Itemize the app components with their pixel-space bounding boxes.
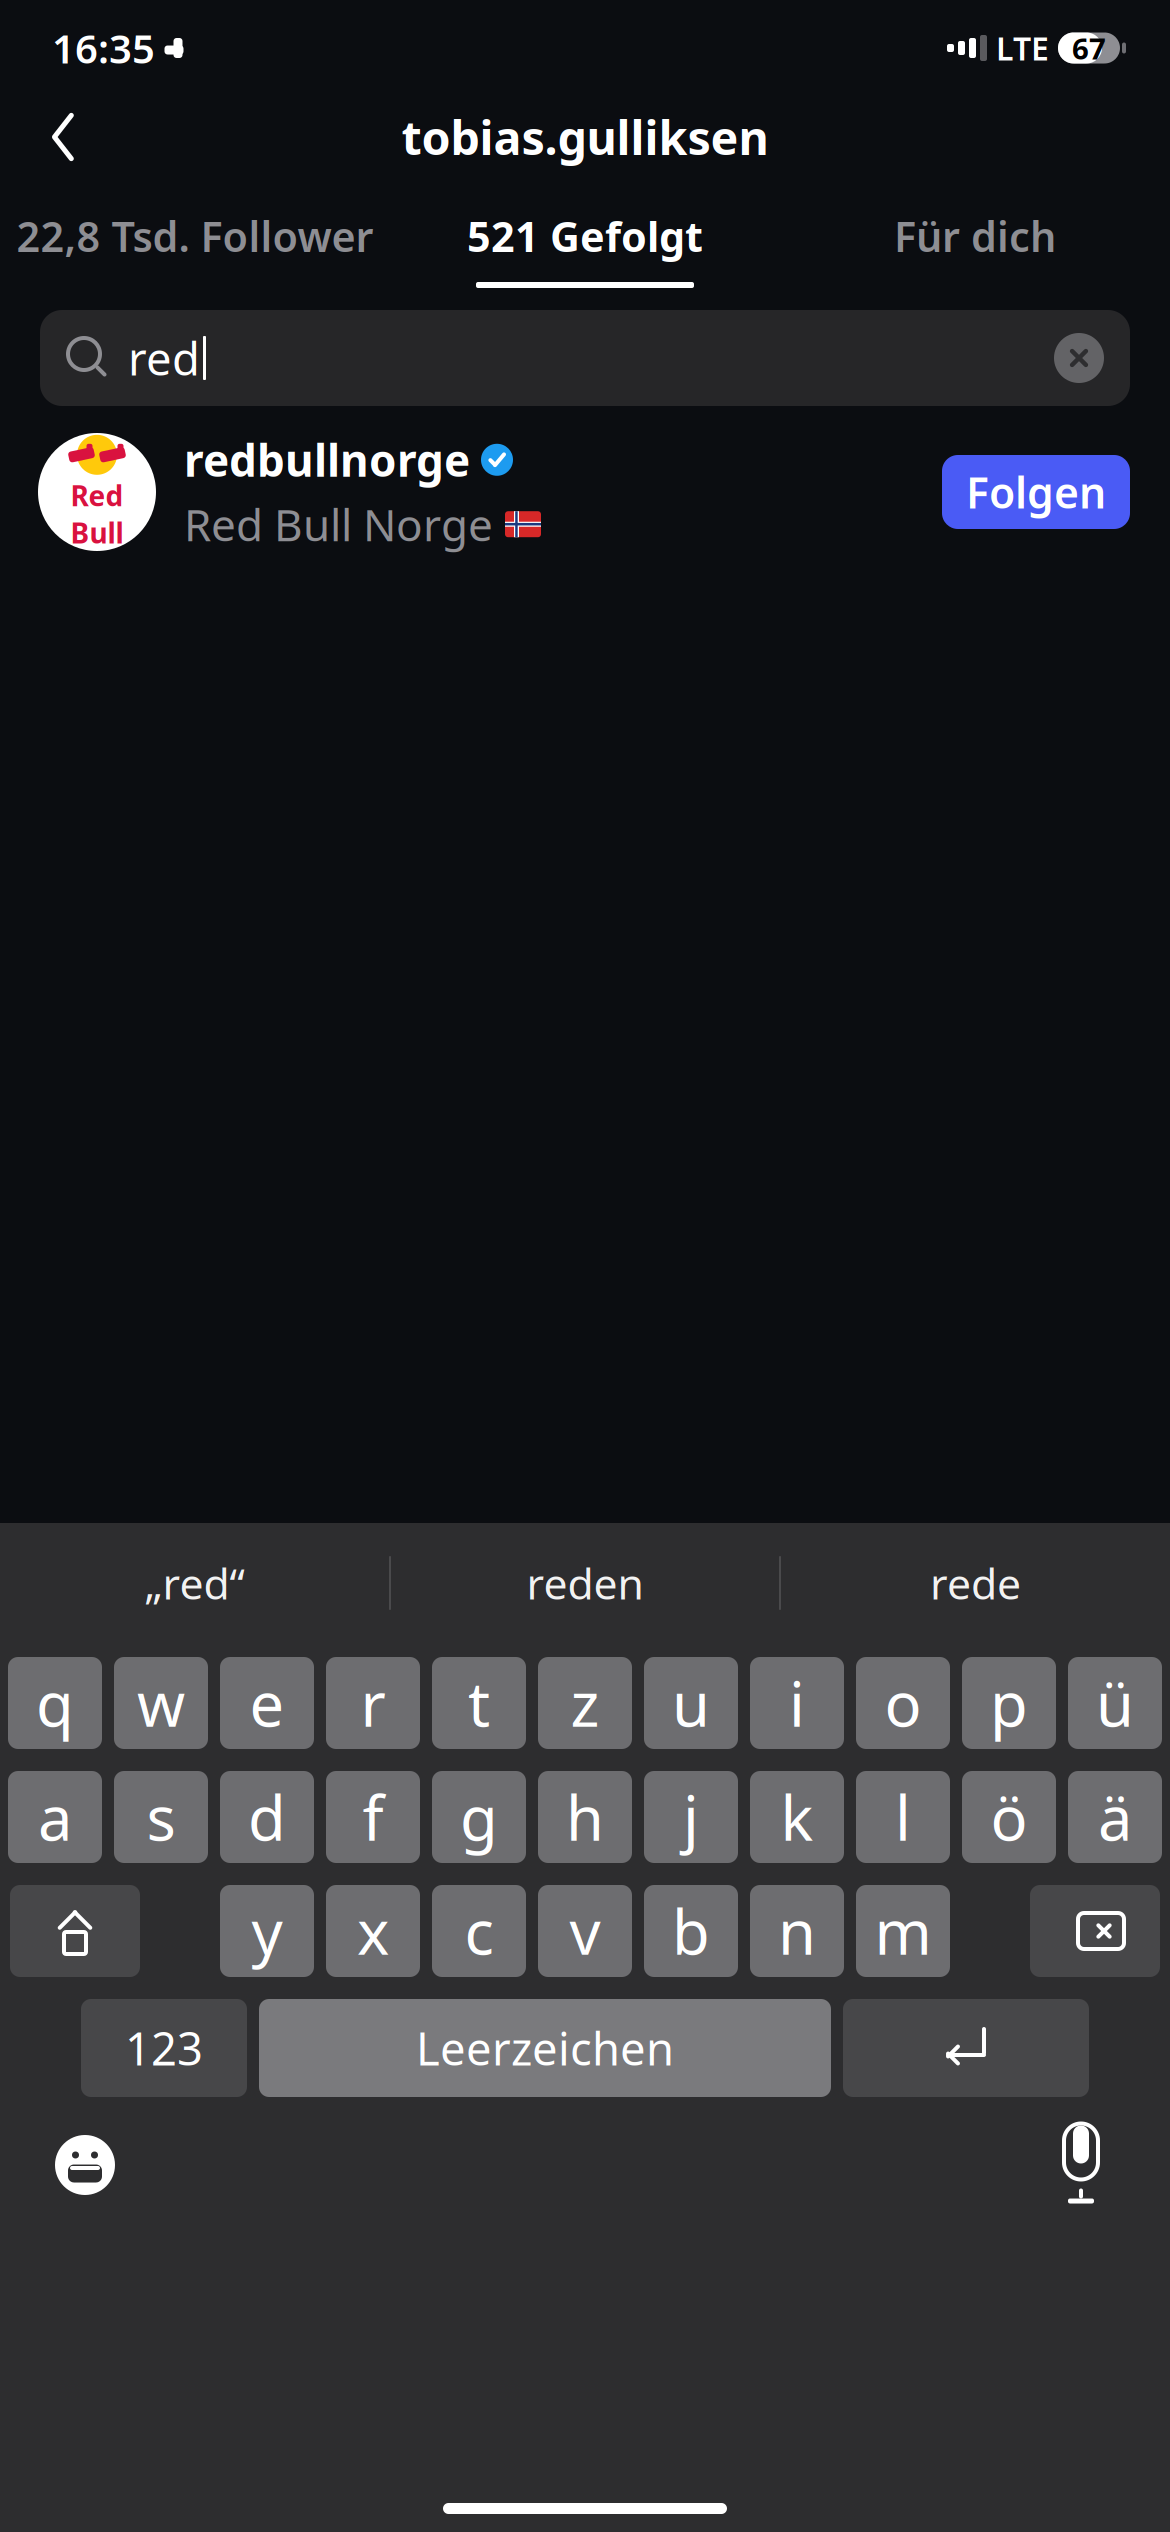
button[interactable]: g bbox=[432, 1771, 526, 1863]
staticText: m bbox=[874, 1890, 931, 1972]
button[interactable]: y bbox=[220, 1885, 314, 1977]
button[interactable]: Shift bbox=[10, 1885, 140, 1977]
button[interactable]: r bbox=[326, 1657, 420, 1749]
button[interactable]: b bbox=[644, 1885, 738, 1977]
button[interactable]: z bbox=[538, 1657, 632, 1749]
button[interactable]: Clear text bbox=[1042, 321, 1116, 395]
staticText: p bbox=[990, 1662, 1028, 1744]
staticText: w bbox=[137, 1662, 185, 1744]
staticText: b bbox=[672, 1890, 710, 1972]
staticText: s bbox=[146, 1776, 175, 1858]
staticText: ö bbox=[990, 1776, 1027, 1858]
button[interactable]: w bbox=[114, 1657, 208, 1749]
button[interactable]: c bbox=[432, 1885, 526, 1977]
staticText: Folgen bbox=[966, 464, 1106, 520]
staticText: e bbox=[249, 1662, 284, 1744]
button[interactable]: Für dich bbox=[780, 190, 1170, 288]
staticText: redbullnorge bbox=[184, 431, 470, 489]
button[interactable]: n bbox=[750, 1885, 844, 1977]
staticText: z bbox=[570, 1662, 599, 1744]
staticText: r bbox=[360, 1662, 385, 1744]
staticText: rede bbox=[930, 1555, 1021, 1611]
staticText: f bbox=[362, 1776, 383, 1858]
staticText: 123 bbox=[125, 2018, 203, 2078]
button[interactable]: o bbox=[856, 1657, 950, 1749]
staticText: 22,8 Tsd. Follower bbox=[16, 209, 373, 263]
staticText: reden bbox=[526, 1555, 643, 1611]
button[interactable]: l bbox=[856, 1771, 950, 1863]
staticText: y bbox=[251, 1890, 282, 1972]
button[interactable]: Leerzeichen bbox=[259, 1999, 831, 2097]
button[interactable]: rede bbox=[781, 1523, 1170, 1643]
button[interactable]: ü bbox=[1068, 1657, 1162, 1749]
staticText: tobias.gulliksen bbox=[401, 106, 768, 168]
button[interactable]: Emoji keyboard bbox=[30, 2115, 140, 2215]
staticText: Red Bull bbox=[70, 477, 123, 551]
staticText: ü bbox=[1096, 1662, 1134, 1744]
button[interactable]: e bbox=[220, 1657, 314, 1749]
button[interactable]: Delete bbox=[1030, 1885, 1160, 1977]
button[interactable]: reden bbox=[391, 1523, 779, 1643]
staticText: c bbox=[464, 1890, 493, 1972]
staticText: o bbox=[884, 1662, 921, 1744]
button[interactable]: x bbox=[326, 1885, 420, 1977]
staticText: 521 Gefolgt bbox=[467, 209, 703, 263]
button[interactable]: 521 Gefolgt bbox=[390, 190, 780, 288]
staticText: x bbox=[357, 1890, 389, 1972]
staticText: LTE bbox=[996, 27, 1049, 69]
button[interactable]: Red Bull bbox=[0, 418, 1170, 566]
staticText: n bbox=[778, 1890, 816, 1972]
staticText: h bbox=[566, 1776, 604, 1858]
button[interactable]: s bbox=[114, 1771, 208, 1863]
button[interactable]: Return bbox=[843, 1999, 1089, 2097]
staticText: red bbox=[128, 328, 200, 388]
button[interactable]: k bbox=[750, 1771, 844, 1863]
button[interactable]: q bbox=[8, 1657, 102, 1749]
staticText: u bbox=[672, 1662, 710, 1744]
staticText: i bbox=[789, 1662, 805, 1744]
button[interactable]: a bbox=[8, 1771, 102, 1863]
button[interactable]: d bbox=[220, 1771, 314, 1863]
button[interactable]: Folgen bbox=[942, 455, 1130, 529]
staticText: t bbox=[468, 1662, 490, 1744]
staticText: 67 bbox=[1072, 28, 1106, 67]
staticText: Für dich bbox=[894, 209, 1056, 263]
staticText: l bbox=[895, 1776, 911, 1858]
staticText: k bbox=[780, 1776, 813, 1858]
button[interactable]: Dictation bbox=[1026, 2115, 1136, 2215]
staticText: g bbox=[460, 1776, 498, 1858]
button[interactable]: i bbox=[750, 1657, 844, 1749]
staticText: j bbox=[683, 1776, 699, 1858]
button[interactable]: ä bbox=[1068, 1771, 1162, 1863]
staticText: q bbox=[36, 1662, 74, 1744]
button[interactable]: „red“ bbox=[0, 1523, 389, 1643]
button[interactable]: j bbox=[644, 1771, 738, 1863]
button[interactable]: u bbox=[644, 1657, 738, 1749]
button[interactable]: t bbox=[432, 1657, 526, 1749]
button[interactable]: 22,8 Tsd. Follower bbox=[0, 190, 390, 288]
staticText: 16:35 bbox=[52, 21, 155, 74]
button[interactable]: p bbox=[962, 1657, 1056, 1749]
button[interactable]: v bbox=[538, 1885, 632, 1977]
button[interactable]: f bbox=[326, 1771, 420, 1863]
staticText: Leerzeichen bbox=[416, 2018, 674, 2078]
button[interactable]: m bbox=[856, 1885, 950, 1977]
button[interactable]: Back bbox=[20, 94, 106, 180]
button[interactable]: 123 bbox=[81, 1999, 247, 2097]
staticText: Red Bull Norge bbox=[184, 495, 493, 553]
staticText: a bbox=[38, 1776, 72, 1858]
staticText: v bbox=[569, 1890, 600, 1972]
button[interactable]: ö bbox=[962, 1771, 1056, 1863]
staticText: „red“ bbox=[144, 1555, 244, 1611]
button[interactable]: h bbox=[538, 1771, 632, 1863]
staticText: ä bbox=[1098, 1776, 1132, 1858]
staticText: d bbox=[248, 1776, 286, 1858]
